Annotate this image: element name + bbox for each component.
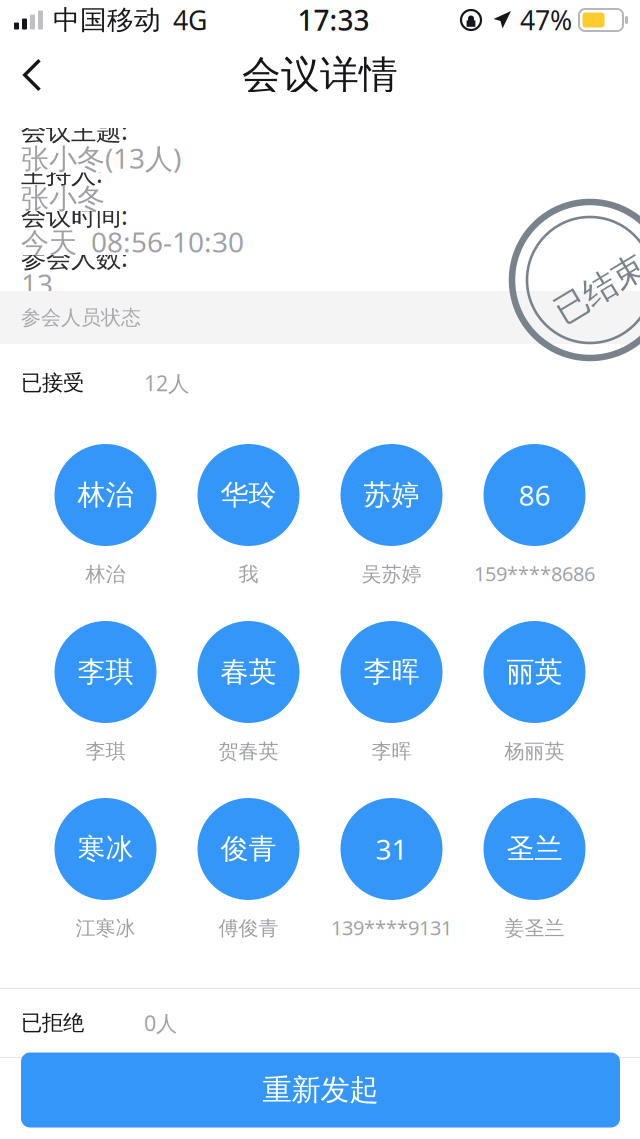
staticText: 李琪: [77, 654, 133, 690]
staticText: 已拒绝: [21, 1010, 84, 1036]
staticText: 姜圣兰: [504, 916, 564, 941]
staticText: 已接受: [21, 370, 84, 396]
staticText: 47%: [520, 2, 572, 38]
staticText: 4G: [173, 2, 207, 38]
staticText: 17:33: [297, 1, 369, 39]
staticText: 杨丽英: [504, 739, 564, 764]
staticText: 12人: [144, 368, 189, 398]
staticText: 吴苏婷: [361, 562, 421, 587]
staticText: 林治: [77, 477, 133, 513]
staticText: 张小冬(13人): [21, 139, 181, 177]
staticText: 贺春英: [218, 739, 278, 764]
staticText: 会议时间:: [21, 198, 128, 232]
staticText: 华玲: [220, 477, 276, 513]
button[interactable]: 林治: [34, 444, 177, 587]
button[interactable]: 华玲: [177, 444, 320, 587]
staticText: 傅俊青: [218, 916, 278, 941]
staticText: 今天 08:56-10:30: [21, 223, 244, 261]
button[interactable]: 31: [320, 798, 463, 941]
staticText: 林治: [85, 562, 125, 587]
staticText: 重新发起: [262, 1071, 378, 1108]
staticText: 李琪: [85, 739, 125, 764]
staticText: 会议主题:: [21, 113, 128, 147]
button[interactable]: 丽英: [463, 621, 606, 764]
staticText: 张小冬: [21, 181, 105, 216]
button[interactable]: 苏婷: [320, 444, 463, 587]
staticText: 已结束: [550, 268, 640, 310]
staticText: 中国移动: [53, 3, 161, 37]
staticText: 江寒冰: [75, 916, 135, 941]
button[interactable]: 李晖: [320, 621, 463, 764]
button[interactable]: 重新发起: [21, 1052, 620, 1127]
button[interactable]: 返回: [1, 44, 63, 106]
staticText: 13: [21, 265, 53, 303]
staticText: 李晖: [371, 739, 411, 764]
staticText: 圣兰: [506, 831, 562, 867]
staticText: 李晖: [363, 654, 419, 690]
staticText: 会议详情: [242, 51, 398, 99]
staticText: 86: [518, 476, 550, 514]
staticText: 159****8686: [474, 560, 595, 587]
staticText: 寒冰: [77, 831, 133, 867]
staticText: 丽英: [506, 654, 562, 690]
button[interactable]: 春英: [177, 621, 320, 764]
button[interactable]: 李琪: [34, 621, 177, 764]
staticText: 0人: [144, 1008, 177, 1038]
staticText: 我: [238, 562, 258, 587]
staticText: 139****9131: [331, 914, 452, 941]
staticText: 参会人数:: [21, 240, 128, 274]
button[interactable]: 86: [463, 444, 606, 587]
staticText: 春英: [220, 654, 276, 690]
staticText: 苏婷: [363, 477, 419, 513]
staticText: 31: [375, 830, 407, 868]
staticText: 俊青: [220, 831, 276, 867]
button[interactable]: 俊青: [177, 798, 320, 941]
staticText: 主持人:: [21, 156, 103, 190]
button[interactable]: 寒冰: [34, 798, 177, 941]
staticText: 参会人员状态: [21, 305, 141, 330]
button[interactable]: 圣兰: [463, 798, 606, 941]
